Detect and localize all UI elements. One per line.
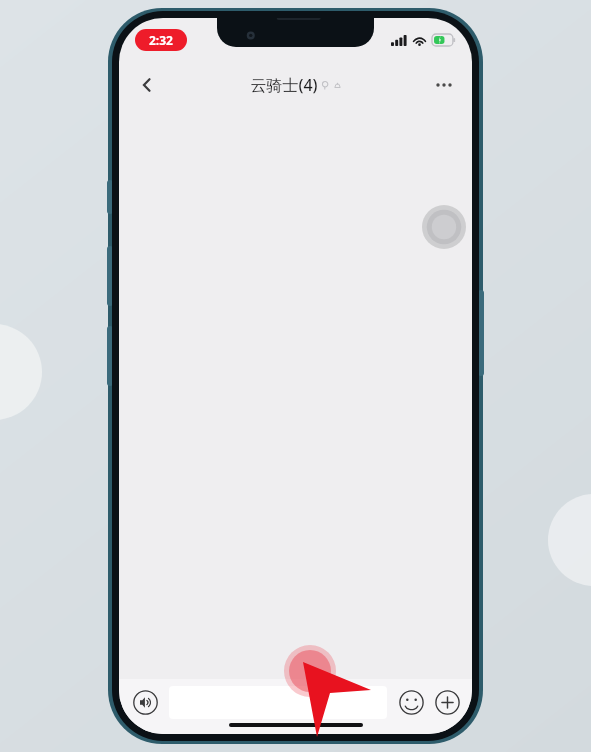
button[interactable]: Emoji [394, 685, 428, 719]
button[interactable]: Voice input [127, 684, 163, 720]
staticText: 2:32 [149, 32, 173, 48]
button[interactable] [169, 686, 387, 719]
button[interactable]: More options [424, 65, 464, 105]
button[interactable]: More [430, 685, 464, 719]
button[interactable]: Back [125, 63, 169, 107]
staticText: 云骑士(4) [250, 74, 318, 96]
button[interactable]: Assistive touch [422, 205, 466, 249]
